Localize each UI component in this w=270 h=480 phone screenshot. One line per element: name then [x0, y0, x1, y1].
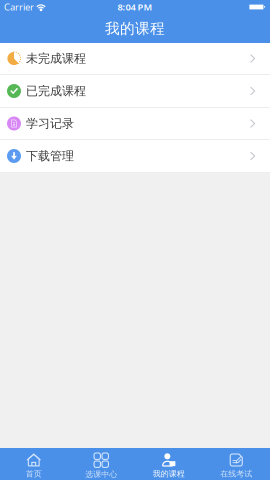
- staticText: 已完成课程: [26, 84, 86, 98]
- staticText: 我的课程: [153, 469, 185, 479]
- button[interactable]: 首页: [0, 448, 67, 480]
- button[interactable]: 下载管理: [0, 140, 270, 173]
- staticText: 首页: [26, 469, 42, 479]
- staticText: 在线考试: [220, 469, 252, 479]
- button[interactable]: 我的课程: [135, 448, 202, 480]
- button[interactable]: 已完成课程: [0, 75, 270, 108]
- button[interactable]: 在线考试: [202, 448, 270, 480]
- button[interactable]: 未完成课程: [0, 43, 270, 75]
- staticText: 选课中心: [85, 469, 117, 479]
- staticText: 我的课程: [105, 19, 165, 37]
- staticText: 学习记录: [26, 116, 74, 131]
- button[interactable]: 选课中心: [67, 448, 135, 480]
- staticText: Carrier: [4, 1, 34, 13]
- staticText: 未完成课程: [26, 51, 86, 66]
- staticText: 8:04 PM: [117, 1, 152, 13]
- staticText: 下载管理: [26, 149, 74, 163]
- button[interactable]: 学习记录: [0, 108, 270, 140]
